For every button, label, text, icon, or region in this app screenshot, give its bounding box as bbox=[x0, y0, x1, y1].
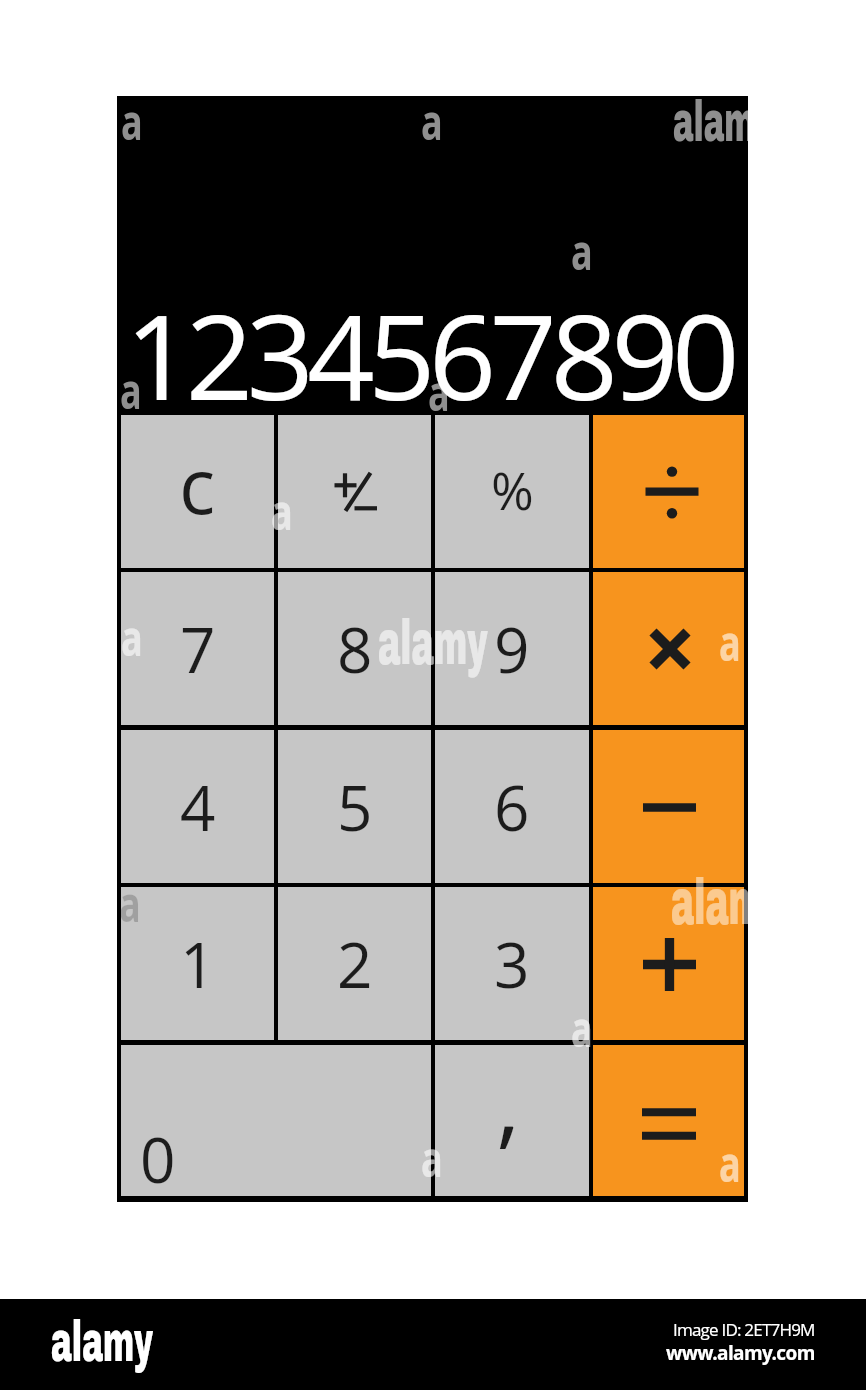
staticText: a bbox=[719, 1129, 741, 1197]
staticText: www.alamy.com bbox=[666, 1340, 815, 1366]
staticText: a bbox=[571, 217, 593, 285]
button[interactable] bbox=[593, 887, 744, 1040]
button[interactable] bbox=[593, 1045, 744, 1196]
staticText: alamy bbox=[673, 96, 748, 153]
button[interactable]: c bbox=[121, 415, 274, 568]
button[interactable]: 2 bbox=[278, 887, 431, 1040]
staticText: 8 bbox=[337, 607, 373, 691]
staticText: a bbox=[571, 994, 593, 1062]
button[interactable] bbox=[593, 572, 744, 725]
staticText: a bbox=[121, 603, 143, 671]
staticText: 3 bbox=[494, 922, 530, 1006]
staticText: a bbox=[121, 96, 143, 155]
button[interactable]: 4 bbox=[121, 730, 274, 883]
button[interactable]: 5 bbox=[278, 730, 431, 883]
staticText: % bbox=[491, 454, 534, 525]
staticText: 4 bbox=[180, 765, 216, 849]
button[interactable] bbox=[593, 415, 744, 568]
staticText: a bbox=[421, 96, 443, 155]
button[interactable]: 0 bbox=[121, 1045, 431, 1196]
staticText: 5 bbox=[337, 765, 373, 849]
button[interactable] bbox=[593, 730, 744, 883]
staticText: alamy bbox=[51, 1310, 154, 1373]
staticText: 1234567890 bbox=[125, 274, 733, 435]
staticText: 2 bbox=[337, 922, 373, 1006]
button[interactable]: 3 bbox=[435, 887, 589, 1040]
button[interactable]: 1 bbox=[121, 887, 274, 1040]
button[interactable]: % bbox=[435, 415, 589, 568]
staticText: a bbox=[119, 869, 141, 937]
staticText: a bbox=[428, 358, 450, 426]
button[interactable]: 7 bbox=[121, 572, 274, 725]
staticText: 6 bbox=[494, 765, 530, 849]
staticText: a bbox=[719, 608, 741, 676]
staticText: alamy bbox=[378, 610, 488, 677]
staticText: a bbox=[120, 356, 142, 424]
button[interactable]: 8 bbox=[278, 572, 431, 725]
staticText: a bbox=[271, 477, 293, 545]
staticText: a bbox=[421, 1124, 443, 1192]
staticText: 1 bbox=[180, 922, 216, 1006]
staticText: , bbox=[497, 1039, 520, 1164]
button[interactable]: 9 bbox=[435, 572, 589, 725]
staticText: Image ID: 2ET7H9M bbox=[673, 1318, 815, 1341]
button[interactable]: , bbox=[435, 1045, 589, 1196]
staticText: alamy bbox=[671, 868, 748, 938]
staticText: 7 bbox=[180, 607, 216, 691]
button[interactable] bbox=[278, 415, 431, 568]
staticText: 0 bbox=[140, 1117, 176, 1201]
button[interactable]: 6 bbox=[435, 730, 589, 883]
staticText: c bbox=[179, 433, 216, 536]
staticText: 9 bbox=[494, 607, 530, 691]
